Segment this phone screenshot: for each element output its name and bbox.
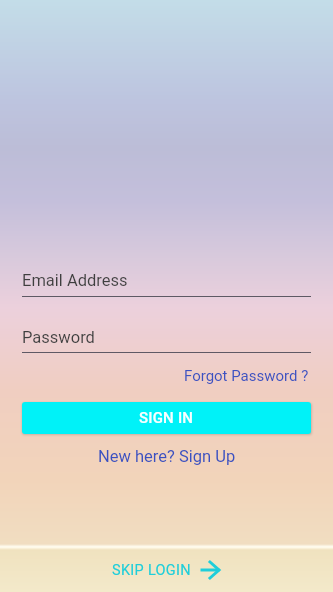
- staticText: SKIP LOGIN: [112, 562, 191, 579]
- staticText: Password: [22, 328, 95, 347]
- button[interactable]: SKIP LOGIN: [0, 557, 333, 583]
- button[interactable]: New here? Sign Up: [98, 447, 236, 466]
- button[interactable]: Password: [22, 328, 311, 353]
- staticText: New here? Sign Up: [98, 447, 236, 466]
- button[interactable]: Email Address: [22, 271, 311, 297]
- staticText: Email Address: [22, 271, 128, 290]
- staticText: Forgot Password ?: [184, 367, 309, 385]
- button[interactable]: SIGN IN: [22, 402, 311, 434]
- staticText: SIGN IN: [139, 409, 194, 427]
- button[interactable]: Forgot Password ?: [184, 367, 309, 385]
